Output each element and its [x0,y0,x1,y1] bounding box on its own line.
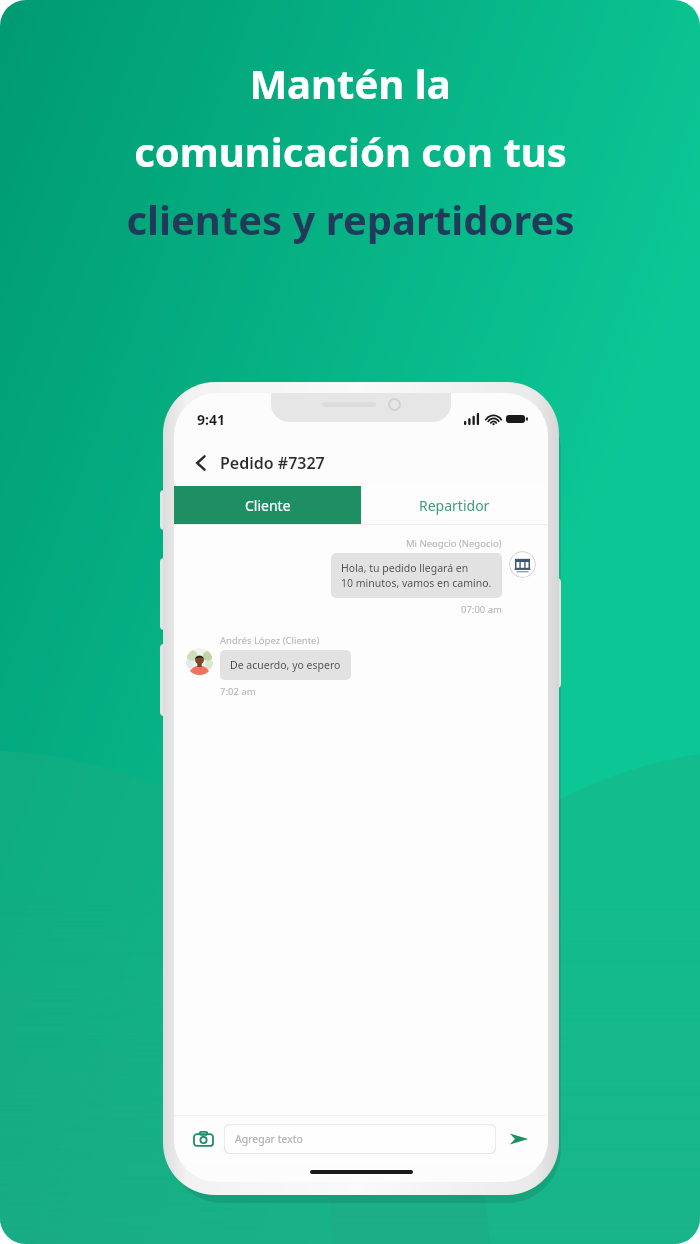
button[interactable]: Cliente [174,486,361,524]
staticText: 7:02 am [220,685,256,698]
staticText: 9:41 [197,410,225,429]
staticText: clientes y repartidores [126,192,575,246]
staticText: De acuerdo, yo espero [230,658,341,672]
staticText: Mi Neogcio (Negocio) [406,537,502,550]
staticText: Cliente [245,496,291,515]
staticText: Pedido #7327 [220,452,325,474]
staticText: Repartidor [419,496,490,515]
button[interactable]: Agregar texto [224,1124,496,1154]
button[interactable]: Send [504,1124,534,1154]
button[interactable]: Back [184,446,218,480]
staticText: Andrés López (Cliente) [220,634,320,647]
staticText: Agregar texto [235,1132,303,1146]
staticText: Hola, tu pedido llegará en 10 minutos, v… [341,561,492,590]
staticText: Mantén la [249,56,451,110]
staticText: 07:00 am [461,603,502,616]
staticText: comunicación con tus [134,124,567,178]
button[interactable]: Attach photo [188,1124,218,1154]
button[interactable]: Repartidor [361,486,548,524]
